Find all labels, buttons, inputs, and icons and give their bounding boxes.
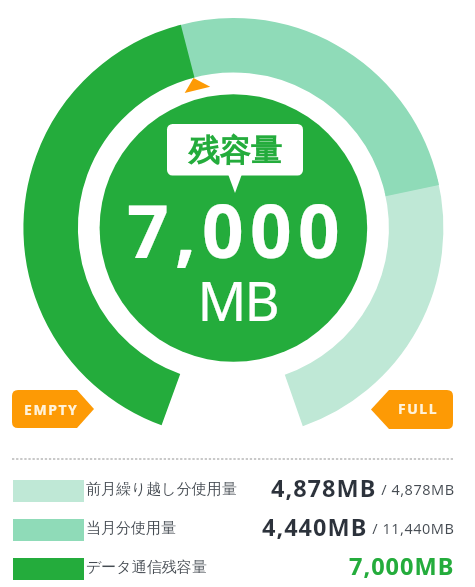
staticText: 4,878MB	[271, 472, 377, 501]
staticText: 7,000	[0, 180, 474, 279]
staticText: EMPTY	[24, 400, 79, 419]
staticText: 当月分使用量	[86, 519, 176, 538]
button[interactable]: Full	[371, 390, 453, 429]
staticText: 残容量	[167, 131, 303, 170]
staticText: 4,440MB	[262, 511, 368, 540]
staticText: データ通信残容量	[86, 558, 207, 577]
button[interactable]: Empty	[12, 390, 94, 428]
staticText: 7,000MB	[349, 550, 455, 579]
staticText: MB	[0, 263, 475, 337]
staticText: / 11,440MB	[368, 518, 455, 538]
button[interactable]: データ通信残容量	[0, 558, 475, 587]
staticText: FULL	[398, 399, 439, 418]
button[interactable]: 前月繰り越し分使用量	[0, 480, 475, 509]
staticText: 前月繰り越し分使用量	[86, 480, 237, 499]
button[interactable]: 当月分使用量	[0, 519, 475, 548]
staticText: / 4,878MB	[377, 479, 455, 499]
